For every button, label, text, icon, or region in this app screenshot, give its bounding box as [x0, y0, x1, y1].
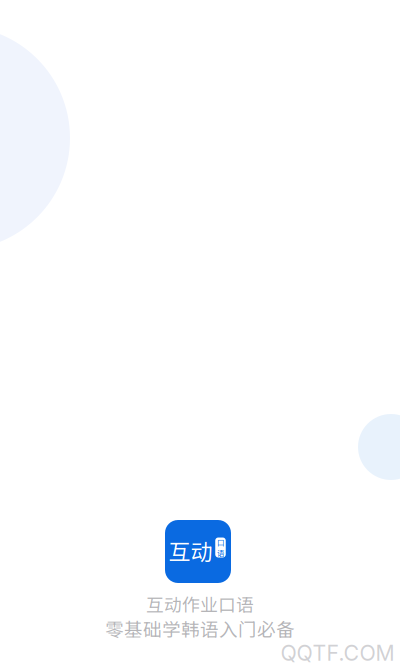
staticText: 语 — [217, 547, 224, 558]
staticText: 互动 — [168, 535, 212, 566]
staticText: 口 — [217, 537, 224, 547]
staticText: 互动作业口语 — [146, 591, 254, 617]
staticText: 零基础学韩语入门必备 — [105, 615, 295, 642]
staticText: QQTF.COM — [280, 640, 394, 666]
